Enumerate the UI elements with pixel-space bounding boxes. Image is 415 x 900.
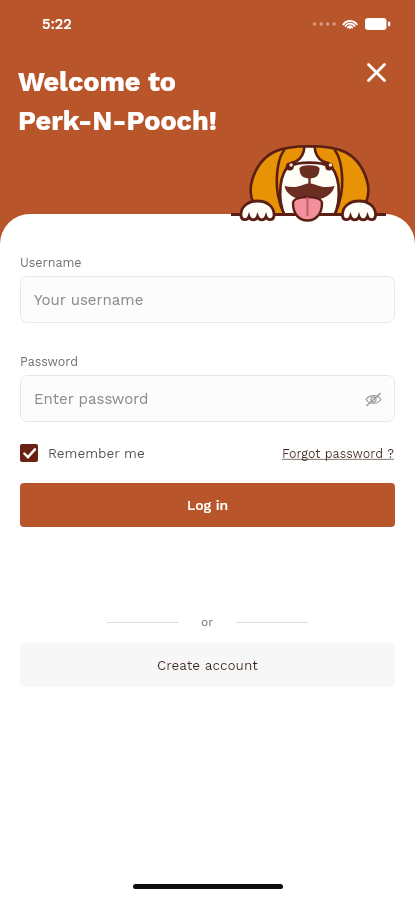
staticText: Password: [20, 354, 78, 369]
staticText: 5:22: [42, 16, 72, 33]
button[interactable]: Log in: [20, 483, 395, 527]
staticText: Remember me: [48, 445, 145, 461]
button[interactable]: Your username: [20, 276, 395, 323]
staticText: Log in: [187, 497, 229, 513]
button[interactable]: Remember me: [20, 444, 145, 462]
staticText: or: [201, 615, 214, 629]
staticText: Create account: [157, 657, 258, 673]
button[interactable]: Create account: [20, 643, 395, 687]
staticText: Forgot password ?: [282, 446, 395, 461]
button[interactable]: Close: [356, 52, 396, 92]
button[interactable]: Show password: [363, 389, 383, 409]
staticText: Your username: [34, 291, 144, 309]
staticText: Username: [20, 255, 82, 270]
staticText: Perk-N-Pooch!: [18, 105, 217, 137]
staticText: Enter password: [34, 390, 149, 408]
button[interactable]: Forgot password ?: [282, 446, 395, 461]
staticText: Welcome to: [18, 66, 176, 98]
button[interactable]: Enter password: [20, 375, 395, 422]
